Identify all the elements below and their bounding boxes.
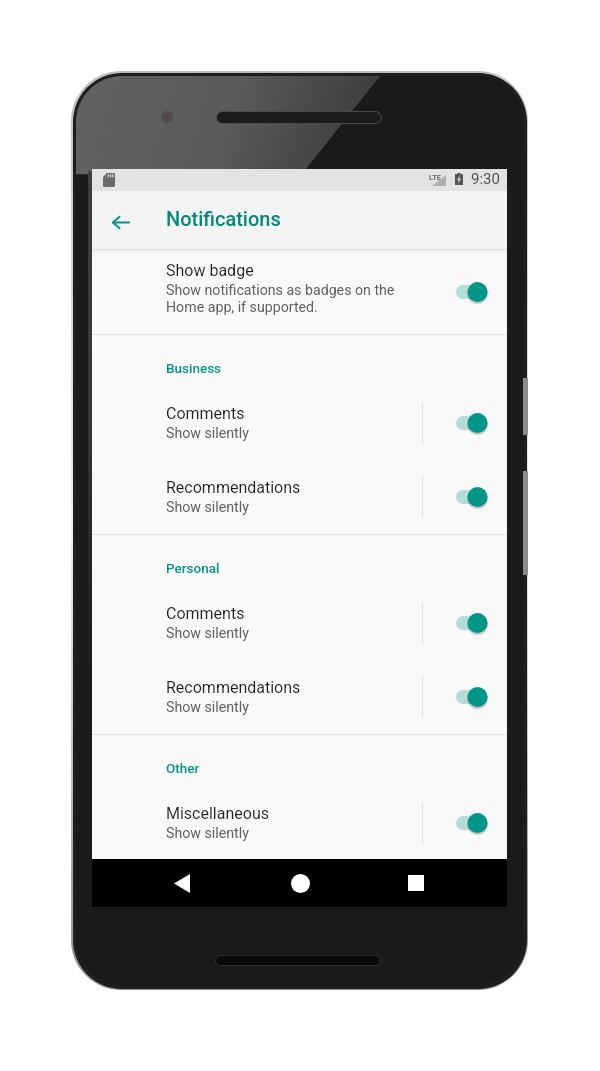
- button[interactable]: Recents: [392, 859, 440, 907]
- staticText: Show badge: [166, 261, 254, 280]
- button[interactable]: Recommendations: [92, 460, 507, 534]
- button[interactable]: Back: [158, 859, 206, 907]
- button[interactable]: Toggle: [456, 279, 490, 305]
- button[interactable]: Miscellaneous: [92, 786, 507, 859]
- staticText: 9:30: [471, 170, 500, 188]
- button[interactable]: Toggle: [456, 484, 490, 510]
- staticText: Comments: [166, 604, 245, 623]
- staticText: Recommendations: [166, 678, 301, 697]
- staticText: Comments: [166, 404, 245, 423]
- staticText: Notifications: [166, 207, 281, 230]
- button[interactable]: Home: [276, 859, 324, 907]
- staticText: Show silently: [166, 425, 249, 442]
- button[interactable]: Comments: [92, 386, 507, 460]
- staticText: Show silently: [166, 699, 249, 716]
- staticText: Show silently: [166, 625, 249, 642]
- staticText: Show silently: [166, 825, 249, 842]
- staticText: Other: [166, 760, 200, 776]
- staticText: Business: [166, 360, 222, 376]
- button[interactable]: Show badge: [92, 249, 507, 334]
- button[interactable]: Back: [101, 202, 141, 242]
- button[interactable]: Recommendations: [92, 660, 507, 734]
- staticText: LTE: [429, 173, 442, 182]
- staticText: Show silently: [166, 499, 249, 516]
- button[interactable]: Toggle: [456, 410, 490, 436]
- staticText: Recommendations: [166, 478, 301, 497]
- button[interactable]: Toggle: [456, 810, 490, 836]
- staticText: Show notifications as badges on the Home…: [166, 282, 395, 315]
- button[interactable]: Comments: [92, 586, 507, 660]
- button[interactable]: Toggle: [456, 610, 490, 636]
- button[interactable]: Toggle: [456, 684, 490, 710]
- staticText: Personal: [166, 560, 220, 576]
- staticText: Miscellaneous: [166, 804, 269, 823]
